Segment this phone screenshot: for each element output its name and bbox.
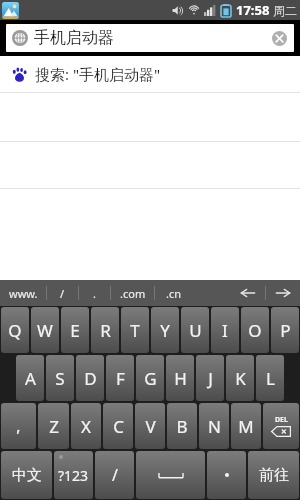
staticText: O (248, 319, 262, 342)
button[interactable]: Space (136, 451, 205, 499)
staticText: W (37, 319, 53, 342)
staticText: M (238, 415, 254, 438)
staticText: E (70, 319, 80, 342)
staticText: X (81, 415, 91, 438)
staticText: Q (8, 319, 22, 342)
button[interactable]: U (181, 307, 209, 353)
button[interactable]: H (166, 355, 194, 401)
button[interactable]: J (196, 355, 224, 401)
staticText: .cn (166, 286, 182, 301)
button[interactable]: . (79, 280, 110, 306)
staticText: K (235, 367, 246, 390)
button[interactable]: www. (0, 280, 46, 306)
button[interactable]: M (231, 403, 261, 449)
staticText: 前往 (259, 466, 289, 485)
staticText: A (25, 367, 36, 390)
button[interactable]: W (31, 307, 59, 353)
staticText: B (176, 415, 188, 438)
staticText: F (116, 367, 125, 390)
staticText: Y (160, 319, 170, 342)
button[interactable]: Z (38, 403, 69, 449)
button[interactable]: 手机启动器 (6, 24, 294, 52)
button[interactable]: E (61, 307, 89, 353)
button[interactable]: Delete (263, 403, 299, 449)
staticText: Z (49, 415, 59, 438)
staticText: S (55, 367, 65, 390)
button[interactable]: S (46, 355, 74, 401)
staticText: 搜索: "手机启动器" (35, 64, 161, 84)
button[interactable]: 中文 (1, 451, 52, 499)
button[interactable]: 前往 (248, 451, 299, 499)
button[interactable]: , (1, 403, 36, 449)
staticText: , (16, 415, 21, 437)
staticText: H (174, 367, 187, 390)
button[interactable]: C (103, 403, 133, 449)
staticText: L (266, 367, 275, 390)
button[interactable]: V (135, 403, 165, 449)
staticText: / (112, 464, 118, 486)
staticText: D (84, 367, 97, 390)
button[interactable]: N (199, 403, 229, 449)
staticText: / (60, 286, 65, 301)
staticText: V (145, 415, 156, 438)
staticText: G (144, 367, 157, 390)
staticText: T (130, 319, 140, 342)
staticText: C (113, 415, 124, 438)
staticText: 中文 (12, 466, 42, 485)
button[interactable]: Q (1, 307, 29, 353)
button[interactable]: / (95, 451, 134, 499)
staticText: www. (9, 286, 38, 301)
button[interactable]: 搜索: "手机启动器" (0, 56, 300, 92)
staticText: P (280, 319, 291, 342)
button[interactable]: R (91, 307, 119, 353)
button[interactable]: / (47, 280, 78, 306)
staticText: 手机启动器 (34, 28, 266, 48)
button[interactable]: Y (151, 307, 179, 353)
staticText: J (208, 367, 213, 390)
button[interactable]: L (256, 355, 284, 401)
staticText: N (208, 415, 221, 438)
button[interactable]: D (76, 355, 104, 401)
staticText: .com (120, 286, 146, 301)
staticText: ?123 (58, 466, 89, 485)
button[interactable]: Previous (231, 280, 265, 306)
button[interactable]: Next (266, 280, 300, 306)
staticText: . (93, 286, 96, 301)
button[interactable]: I (211, 307, 239, 353)
staticText: 周二 (273, 3, 297, 18)
button[interactable]: .com (111, 280, 154, 306)
staticText: DEL (275, 415, 288, 425)
button[interactable]: F (106, 355, 134, 401)
staticText: R (100, 319, 111, 342)
button[interactable]: B (167, 403, 197, 449)
button[interactable]: X (71, 403, 101, 449)
button[interactable]: T (121, 307, 149, 353)
button[interactable]: G (136, 355, 164, 401)
button[interactable]: .cn (155, 280, 192, 306)
staticText: U (189, 319, 202, 342)
button[interactable]: A (16, 355, 44, 401)
button[interactable]: Period (207, 451, 246, 499)
button[interactable]: O (241, 307, 269, 353)
staticText: 17:58 (236, 1, 270, 19)
button[interactable]: ?123 (54, 451, 93, 499)
button[interactable]: Clear (266, 25, 292, 51)
staticText: I (222, 319, 228, 342)
button[interactable]: K (226, 355, 254, 401)
button[interactable]: P (271, 307, 299, 353)
